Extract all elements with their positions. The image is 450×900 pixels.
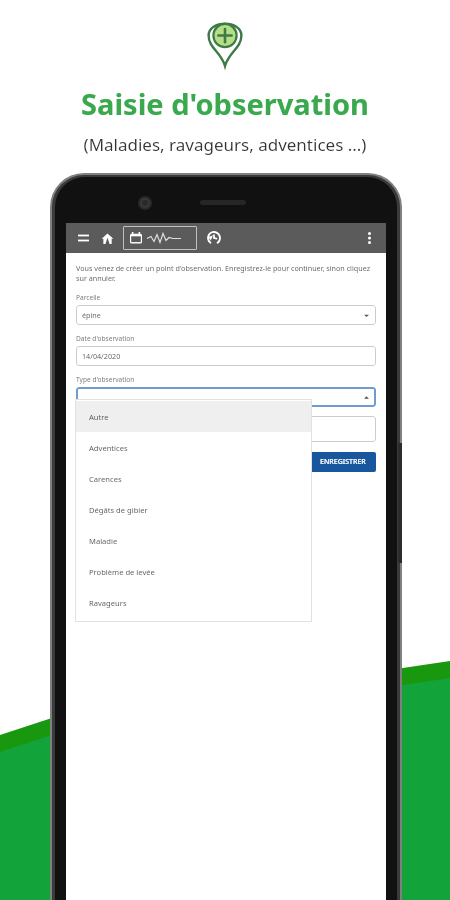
button[interactable]: 14/04/2020 (76, 346, 376, 366)
button[interactable]: Ravageurs (75, 587, 312, 618)
button[interactable]: Carences (75, 463, 312, 494)
button[interactable]: Dégâts de gibier (75, 494, 312, 525)
button[interactable]: Maladie (75, 525, 312, 556)
button[interactable]: Menu (74, 229, 92, 247)
staticText: Problème de levée (89, 567, 155, 577)
other: Add observation point (207, 18, 243, 68)
button[interactable]: Problème de levée (75, 556, 312, 587)
staticText: Date d'observation (76, 334, 135, 343)
button[interactable]: More options (360, 229, 378, 247)
button[interactable]: Home (98, 229, 116, 247)
staticText: Autre (89, 412, 109, 422)
button[interactable]: Calendar (123, 226, 197, 250)
staticText: Parcelle (76, 293, 101, 302)
staticText: Adventices (89, 443, 128, 453)
staticText: Saisie d'observation (0, 84, 450, 123)
button[interactable] (76, 416, 376, 442)
staticText: ENREGISTRER (320, 457, 366, 467)
staticText: (Maladies, ravageurs, adventices ...) (0, 133, 450, 156)
staticText: Type d'observation (76, 375, 135, 384)
button[interactable] (76, 387, 376, 407)
staticText: Maladie (89, 536, 118, 546)
staticText: Dégâts de gibier (89, 505, 148, 515)
staticText: Carences (89, 474, 122, 484)
button[interactable]: ENREGISTRER (310, 452, 376, 472)
button[interactable]: épine (76, 305, 376, 325)
button[interactable]: Adventices (75, 432, 312, 463)
button[interactable]: History (204, 228, 224, 248)
button[interactable]: Autre (75, 401, 312, 432)
staticText: épine (82, 310, 363, 320)
staticText: 14/04/2020 (82, 351, 121, 361)
staticText: Vous venez de créer un point d'observati… (76, 263, 376, 283)
staticText: Ravageurs (89, 598, 127, 608)
